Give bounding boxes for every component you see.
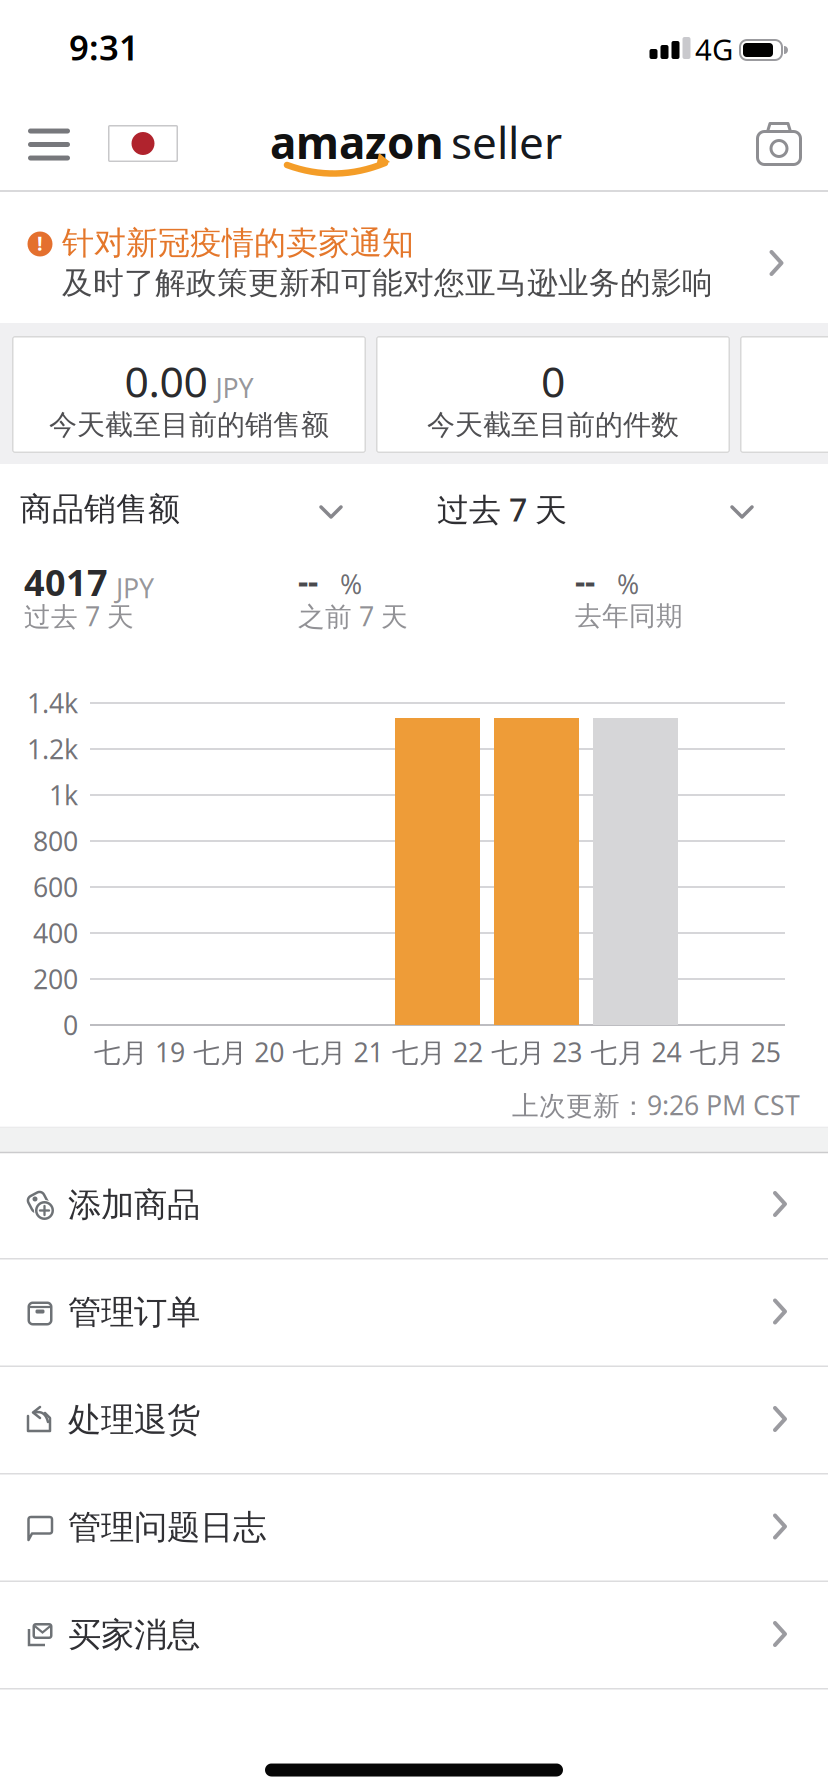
button[interactable]: 买家消息 [0,1582,828,1688]
staticText: 七月 25 [690,1034,781,1070]
staticText: seller [451,113,562,171]
staticText: 400 [33,915,78,951]
button[interactable]: 过去 7 天 [427,485,762,533]
staticText: 9:31 [69,24,139,70]
staticText: 七月 21 [293,1034,384,1070]
staticText: 添加商品 [68,1184,200,1225]
button[interactable]: 添加商品 [0,1152,828,1258]
button[interactable]: 管理订单 [0,1259,828,1365]
staticText: 七月 22 [392,1034,483,1070]
staticText: -- [575,560,595,602]
staticText: 0 [541,353,565,409]
staticText: 七月 19 [94,1034,185,1070]
staticText: ! [37,230,43,256]
staticText: 过去 7 天 [437,488,567,530]
staticText: -- [298,560,318,602]
staticText: 1.2k [27,731,78,767]
staticText: 去年同期 [575,600,683,632]
staticText: 处理退货 [68,1399,200,1440]
staticText: 之前 7 天 [298,598,408,634]
button[interactable]: 0 [376,336,730,453]
staticText: JPY [215,370,253,405]
button[interactable]: 管理问题日志 [0,1474,828,1580]
button[interactable]: 处理退货 [0,1367,828,1473]
button[interactable]: ! [0,192,828,323]
staticText: 0.00 [124,353,207,409]
staticText: 上次更新：9:26 PM CST [512,1087,800,1123]
staticText: 0 [63,1007,78,1043]
button[interactable]: Menu [19,116,79,172]
staticText: 1k [49,777,78,813]
staticText: 4G [695,29,733,68]
staticText: 七月 24 [590,1034,681,1070]
staticText: 管理订单 [68,1292,200,1333]
staticText: 今天截至目前的件数 [427,408,679,442]
staticText: 及时了解政策更新和可能对您亚马逊业务的影响 [62,264,713,302]
staticText: 过去 7 天 [24,598,134,634]
staticText: 4017 [24,558,108,606]
staticText: 买家消息 [68,1614,200,1655]
staticText: 600 [33,869,78,905]
button[interactable]: Scan [756,122,802,166]
staticText: 今天截至目前的销售额 [49,408,329,442]
staticText: 800 [33,823,78,859]
staticText: 七月 20 [193,1034,284,1070]
staticText: 管理问题日志 [68,1507,266,1548]
staticText: % [340,566,362,602]
button[interactable]: 商品销售额 [10,485,350,533]
staticText: 针对新冠疫情的卖家通知 [62,223,414,263]
staticText: amazon [270,113,444,171]
staticText: JPY [116,570,154,606]
button[interactable]: 0.00 [740,336,828,453]
staticText: 七月 23 [491,1034,582,1070]
staticText: 1.4k [27,685,78,721]
staticText: 商品销售额 [20,489,180,529]
button[interactable]: Marketplace Japan [108,125,178,162]
staticText: 200 [33,961,78,997]
button[interactable]: 0.00 [12,336,366,453]
staticText: % [617,566,639,602]
